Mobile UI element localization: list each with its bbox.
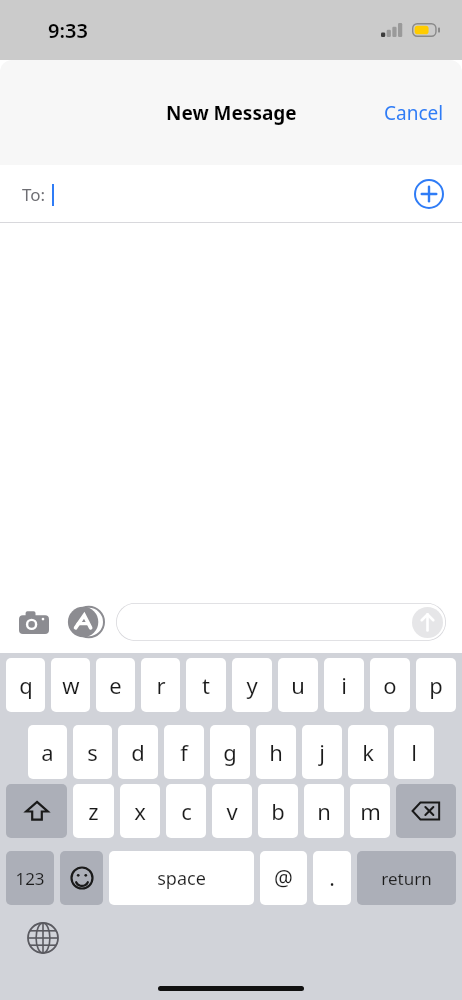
button[interactable]: Emoji	[60, 851, 103, 905]
staticText: i	[341, 670, 347, 700]
button[interactable]: Apps	[66, 603, 104, 641]
staticText: w	[62, 670, 80, 700]
button[interactable]: z	[73, 784, 114, 838]
button[interactable]: j	[302, 725, 342, 779]
button[interactable]: Backspace	[396, 784, 456, 838]
staticText: s	[87, 737, 98, 767]
staticText: space	[157, 866, 206, 891]
staticText: u	[291, 670, 305, 700]
button[interactable]: m	[350, 784, 390, 838]
staticText: a	[41, 737, 54, 767]
staticText: e	[109, 670, 122, 700]
staticText: @	[274, 864, 293, 893]
staticText: h	[269, 737, 283, 767]
staticText: c	[181, 796, 192, 826]
button[interactable]: b	[258, 784, 298, 838]
staticText: l	[411, 737, 417, 767]
staticText: 9:33	[48, 17, 88, 44]
button[interactable]: 123	[6, 851, 54, 905]
button[interactable]: Cancel	[366, 88, 462, 138]
staticText: o	[383, 670, 397, 700]
button[interactable]: Send	[116, 603, 446, 641]
staticText: j	[319, 737, 325, 767]
staticText: return	[381, 867, 432, 890]
staticText: To:	[22, 183, 46, 206]
button[interactable]: Camera	[16, 604, 52, 640]
button[interactable]: g	[210, 725, 250, 779]
staticText: x	[134, 796, 146, 826]
staticText: b	[271, 796, 285, 826]
button[interactable]: f	[164, 725, 204, 779]
button[interactable]: Add contact	[414, 179, 444, 209]
staticText: v	[226, 796, 238, 826]
button[interactable]: e	[96, 658, 135, 712]
button[interactable]: v	[212, 784, 252, 838]
button[interactable]: x	[120, 784, 160, 838]
button[interactable]: a	[28, 725, 67, 779]
staticText: q	[19, 670, 33, 700]
button[interactable]: c	[166, 784, 206, 838]
button[interactable]: i	[324, 658, 364, 712]
button[interactable]: p	[416, 658, 456, 712]
button[interactable]: return	[357, 851, 456, 905]
staticText: g	[223, 737, 237, 767]
button[interactable]: n	[304, 784, 344, 838]
button[interactable]: s	[73, 725, 112, 779]
button[interactable]: h	[256, 725, 296, 779]
button[interactable]: r	[141, 658, 180, 712]
staticText: t	[202, 670, 210, 700]
staticText: n	[317, 796, 331, 826]
staticText: 123	[15, 867, 45, 890]
button[interactable]: space	[109, 851, 254, 905]
button[interactable]: Send	[412, 607, 443, 638]
staticText: f	[180, 737, 188, 767]
staticText: d	[131, 737, 145, 767]
staticText: k	[362, 737, 374, 767]
button[interactable]: To:	[0, 165, 462, 223]
staticText: m	[360, 796, 381, 826]
staticText: y	[246, 670, 258, 700]
button[interactable]: Shift	[6, 784, 67, 838]
staticText: Cancel	[384, 100, 444, 126]
button[interactable]: d	[118, 725, 158, 779]
button[interactable]: t	[186, 658, 226, 712]
staticText: r	[156, 670, 166, 700]
staticText: .	[329, 864, 335, 893]
staticText: z	[88, 796, 99, 826]
button[interactable]: l	[394, 725, 434, 779]
button[interactable]: q	[6, 658, 45, 712]
button[interactable]: .	[313, 851, 351, 905]
button[interactable]: u	[278, 658, 318, 712]
button[interactable]: o	[370, 658, 410, 712]
staticText: p	[429, 670, 443, 700]
button[interactable]: Change keyboard	[26, 921, 60, 955]
button[interactable]: y	[232, 658, 272, 712]
button[interactable]: k	[348, 725, 388, 779]
button[interactable]: w	[51, 658, 90, 712]
button[interactable]: @	[260, 851, 307, 905]
staticText: New Message	[166, 100, 297, 126]
